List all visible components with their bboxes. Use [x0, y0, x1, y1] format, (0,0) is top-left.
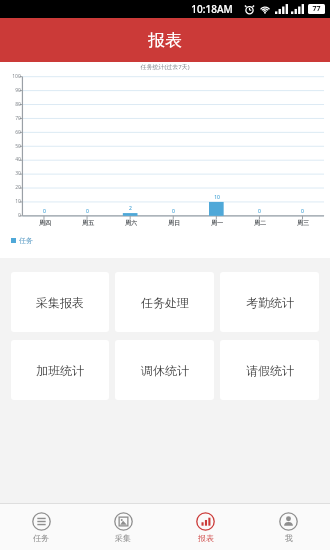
staticText: 报表: [148, 30, 182, 51]
button[interactable]: 任务处理: [115, 272, 214, 332]
staticText: 加班统计: [36, 363, 84, 378]
staticText: 2: [129, 205, 132, 212]
button[interactable]: 考勤统计: [220, 272, 319, 332]
staticText: 0: [43, 208, 46, 215]
button[interactable]: 采集报表: [11, 272, 109, 332]
staticText: 60: [15, 129, 21, 136]
staticText: 任务: [19, 236, 33, 245]
staticText: 100: [12, 73, 21, 80]
staticText: 0: [301, 208, 304, 215]
staticText: 0: [18, 212, 21, 219]
staticText: 10: [214, 194, 220, 201]
staticText: 考勤统计: [246, 295, 294, 310]
staticText: 请假统计: [246, 363, 294, 378]
button[interactable]: 加班统计: [11, 340, 109, 400]
staticText: 0: [172, 208, 175, 215]
staticText: 30: [15, 170, 21, 177]
staticText: 周四: [39, 219, 51, 227]
staticText: 采集报表: [36, 295, 84, 310]
staticText: 40: [15, 156, 21, 163]
staticText: 0: [258, 208, 261, 215]
staticText: 10:18AM: [191, 2, 233, 16]
staticText: 周日: [168, 219, 180, 227]
staticText: 采集: [115, 533, 131, 543]
staticText: 周二: [254, 219, 266, 227]
button[interactable]: 采集: [82, 504, 164, 550]
staticText: 77: [312, 4, 321, 14]
button[interactable]: 报表: [164, 504, 247, 550]
staticText: 周三: [297, 219, 309, 227]
staticText: 10: [15, 198, 21, 205]
staticText: 周六: [125, 219, 137, 227]
staticText: 我: [285, 533, 293, 543]
button[interactable]: 请假统计: [220, 340, 319, 400]
staticText: 90: [15, 87, 21, 94]
button[interactable]: 任务: [0, 504, 82, 550]
button[interactable]: 调休统计: [115, 340, 214, 400]
staticText: 70: [15, 115, 21, 122]
staticText: 20: [15, 184, 21, 191]
staticText: 50: [15, 143, 21, 150]
staticText: 80: [15, 101, 21, 108]
staticText: 任务统计(过去7天): [140, 63, 190, 71]
staticText: 任务处理: [141, 295, 189, 310]
staticText: 周五: [82, 219, 94, 227]
staticText: 0: [86, 208, 89, 215]
staticText: 周一: [211, 219, 223, 227]
staticText: 任务: [33, 533, 49, 543]
button[interactable]: 我: [247, 504, 330, 550]
staticText: 调休统计: [141, 363, 189, 378]
staticText: 报表: [198, 533, 214, 543]
